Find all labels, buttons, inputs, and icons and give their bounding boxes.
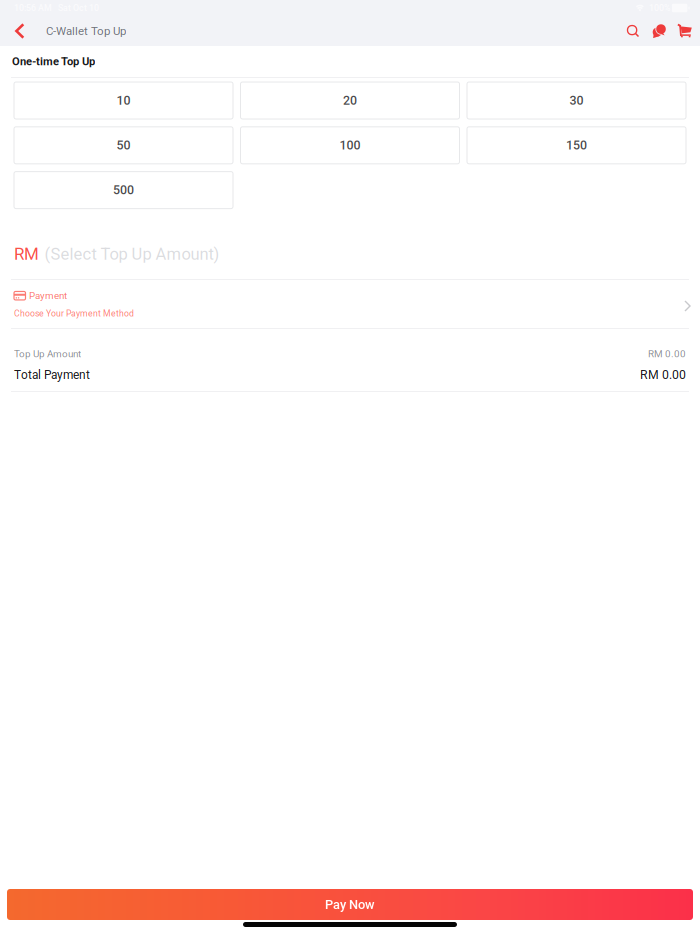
staticText: 50 xyxy=(116,138,130,152)
button[interactable]: 50 xyxy=(14,127,233,164)
staticText: One-time Top Up xyxy=(12,55,95,68)
button[interactable]: Back xyxy=(0,16,39,46)
staticText: 150 xyxy=(566,138,587,152)
staticText: 500 xyxy=(113,183,134,197)
button[interactable]: Payment xyxy=(0,280,700,328)
button[interactable]: 20 xyxy=(240,82,459,119)
staticText: 10 xyxy=(116,93,130,108)
button[interactable]: 100 xyxy=(240,127,459,164)
button[interactable]: Pay Now xyxy=(7,889,693,920)
staticText: Payment xyxy=(29,290,67,301)
staticText: RM 0.00 xyxy=(648,348,686,360)
button[interactable]: Search xyxy=(620,16,646,46)
staticText: Pay Now xyxy=(325,897,375,912)
button[interactable]: Messages xyxy=(646,16,672,46)
staticText: Choose Your Payment Method xyxy=(14,308,134,319)
button[interactable]: Cart xyxy=(672,16,698,46)
staticText: RM xyxy=(14,244,39,264)
staticText: C-Wallet Top Up xyxy=(46,24,126,38)
staticText: (Select Top Up Amount) xyxy=(44,244,219,264)
button[interactable]: 10 xyxy=(14,82,233,119)
staticText: Total Payment xyxy=(14,368,90,382)
staticText: RM 0.00 xyxy=(640,368,686,382)
button[interactable]: 30 xyxy=(467,82,686,119)
staticText: Top Up Amount xyxy=(14,348,81,360)
button[interactable]: 500 xyxy=(14,172,233,209)
staticText: 30 xyxy=(569,93,583,108)
staticText: 20 xyxy=(343,93,357,108)
button[interactable]: 150 xyxy=(467,127,686,164)
staticText: 100 xyxy=(339,138,360,152)
